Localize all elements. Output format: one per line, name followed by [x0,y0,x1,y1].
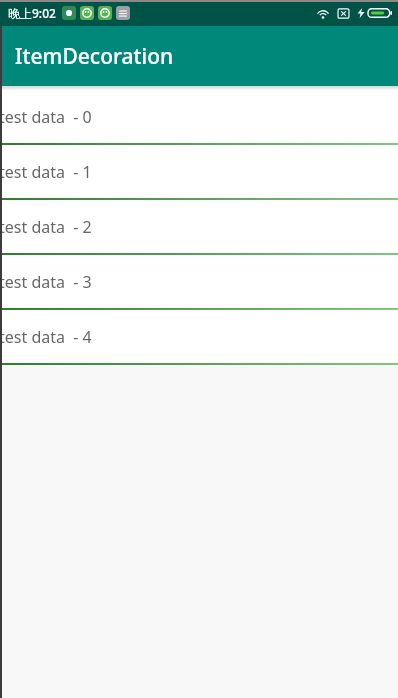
staticText: test data - 3 [0,271,92,293]
button[interactable]: test data - 1 [0,145,398,200]
staticText: test data - 4 [0,326,92,348]
staticText: 晚上9:02 [8,5,56,21]
button[interactable]: test data - 2 [0,200,398,255]
staticText: ItemDecoration [15,42,174,71]
staticText: test data - 0 [0,106,92,128]
staticText: test data - 2 [0,216,92,238]
staticText: test data - 1 [0,161,92,183]
button[interactable]: test data - 0 [0,90,398,145]
button[interactable]: test data - 4 [0,310,398,365]
button[interactable]: test data - 3 [0,255,398,310]
